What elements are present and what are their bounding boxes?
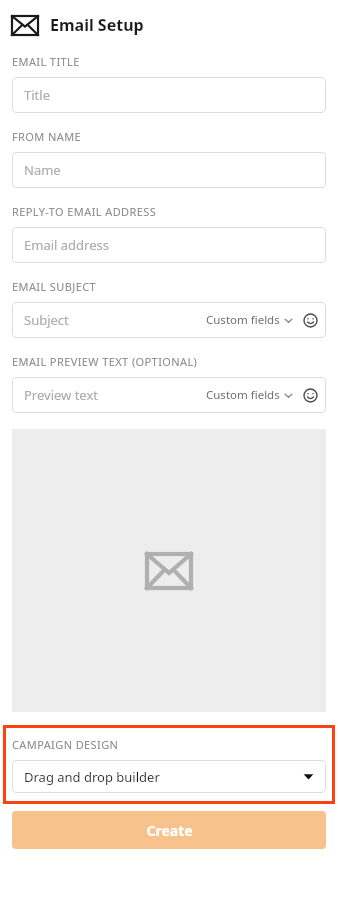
staticText: EMAIL PREVIEW TEXT (OPTIONAL) <box>12 354 198 369</box>
staticText: Custom fields <box>206 387 280 403</box>
staticText: Title <box>24 86 50 104</box>
staticText: Preview text <box>24 386 99 404</box>
staticText: EMAIL SUBJECT <box>12 279 97 294</box>
button[interactable]: Email preview image <box>12 429 326 712</box>
staticText: CAMPAIGN DESIGN <box>12 737 119 752</box>
button[interactable]: Subject <box>12 302 326 338</box>
staticText: Create <box>146 821 193 840</box>
button[interactable]: Preview text <box>12 377 326 413</box>
staticText: EMAIL TITLE <box>12 54 80 69</box>
button[interactable]: Create <box>12 811 326 849</box>
button[interactable]: Name <box>12 152 326 188</box>
button[interactable]: Email address <box>12 227 326 263</box>
button[interactable]: Drag and drop builder <box>12 760 326 793</box>
button[interactable]: Title <box>12 77 326 113</box>
staticText: REPLY-TO EMAIL ADDRESS <box>12 204 157 219</box>
staticText: Custom fields <box>206 312 280 328</box>
button[interactable]: Insert emoji <box>303 388 318 403</box>
staticText: FROM NAME <box>12 129 82 144</box>
button[interactable]: Custom fields <box>204 312 295 328</box>
staticText: Email address <box>24 236 109 254</box>
button[interactable]: Custom fields <box>204 387 295 403</box>
button[interactable]: Insert emoji <box>303 313 318 328</box>
staticText: Email Setup <box>50 14 144 36</box>
staticText: Name <box>24 161 61 179</box>
staticText: Drag and drop builder <box>24 768 160 786</box>
staticText: Subject <box>24 311 69 329</box>
